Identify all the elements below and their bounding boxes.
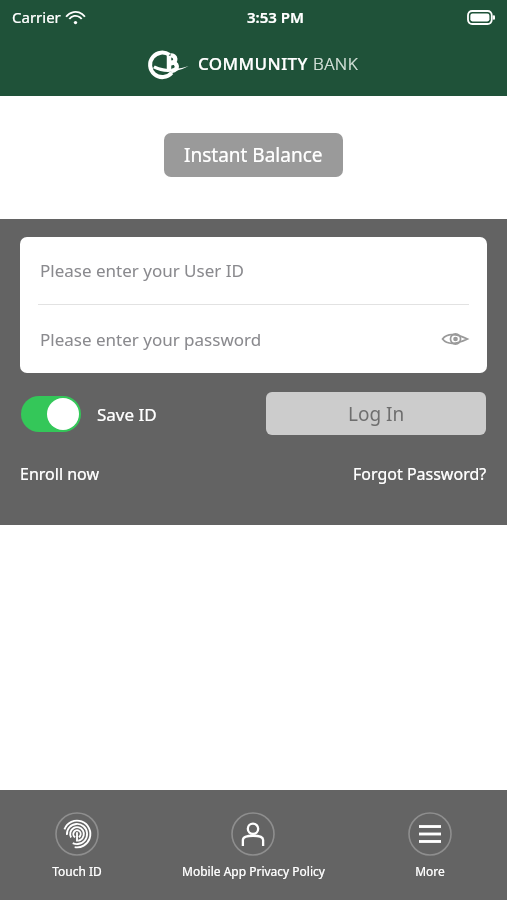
button[interactable]: Touch ID bbox=[0, 790, 153, 900]
staticText: COMMUNITY bbox=[198, 52, 308, 75]
button[interactable]: Log In bbox=[266, 392, 486, 435]
staticText: Please enter your User ID bbox=[40, 259, 244, 282]
button[interactable]: Enroll now bbox=[20, 463, 99, 485]
button[interactable]: More bbox=[353, 790, 507, 900]
staticText: Instant Balance bbox=[184, 142, 323, 168]
button[interactable]: Please enter your User ID bbox=[20, 237, 487, 304]
staticText: Enroll now bbox=[20, 463, 99, 485]
staticText: Touch ID bbox=[52, 863, 102, 879]
button[interactable]: Please enter your password bbox=[20, 305, 487, 373]
button[interactable]: Show password bbox=[439, 323, 471, 355]
staticText: Mobile App Privacy Policy bbox=[182, 863, 325, 879]
staticText: 3:53 PM bbox=[247, 7, 304, 27]
staticText: Save ID bbox=[97, 403, 157, 426]
staticText: Carrier bbox=[12, 7, 61, 27]
staticText: Log In bbox=[348, 401, 405, 427]
button[interactable]: Forgot Password? bbox=[353, 463, 487, 485]
button[interactable]: Instant Balance bbox=[164, 133, 343, 177]
button[interactable]: Mobile App Privacy Policy bbox=[153, 790, 353, 900]
staticText: Please enter your password bbox=[40, 328, 262, 351]
staticText: BANK bbox=[313, 52, 359, 75]
staticText: More bbox=[415, 863, 445, 879]
button[interactable]: Save ID bbox=[21, 396, 157, 432]
staticText: Forgot Password? bbox=[353, 463, 487, 485]
